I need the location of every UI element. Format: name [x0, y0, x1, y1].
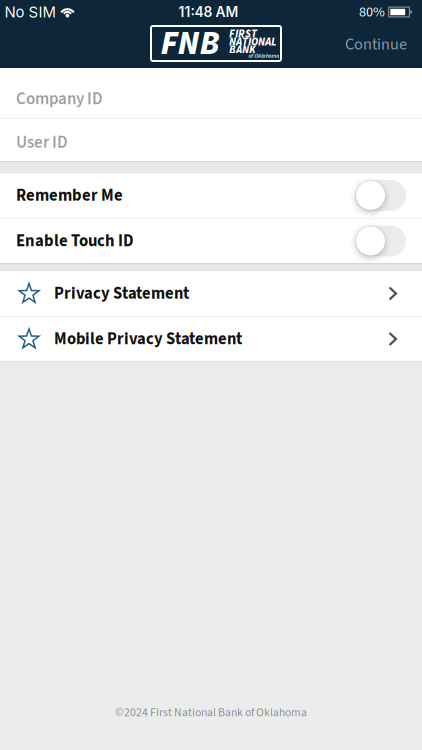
staticText: Mobile Privacy Statement: [54, 327, 242, 351]
staticText: of Oklahoma: [231, 47, 296, 65]
staticText: Continue: [345, 33, 407, 56]
staticText: FNB: [160, 20, 219, 67]
staticText: 80%: [359, 2, 385, 22]
button[interactable]: Mobile Privacy Statement: [0, 317, 422, 361]
button[interactable]: Privacy Statement: [0, 271, 422, 316]
staticText: Privacy Statement: [54, 282, 189, 305]
button[interactable]: Remember Me: [355, 180, 406, 211]
button[interactable]: User ID: [0, 119, 422, 161]
staticText: Company ID: [16, 87, 103, 111]
staticText: NATIONAL: [229, 34, 277, 50]
button[interactable]: Enable Touch ID: [355, 225, 406, 256]
staticText: ©2024 First National Bank of Oklahoma: [115, 704, 307, 721]
staticText: Enable Touch ID: [16, 229, 134, 253]
staticText: Remember Me: [16, 184, 123, 207]
staticText: 11:48 AM: [178, 4, 238, 20]
staticText: No SIM: [4, 3, 55, 21]
staticText: BANK: [229, 42, 256, 58]
staticText: FIRST: [229, 26, 257, 42]
button[interactable]: Company ID: [0, 68, 422, 118]
button[interactable]: Continue: [345, 37, 422, 60]
staticText: User ID: [16, 130, 68, 154]
